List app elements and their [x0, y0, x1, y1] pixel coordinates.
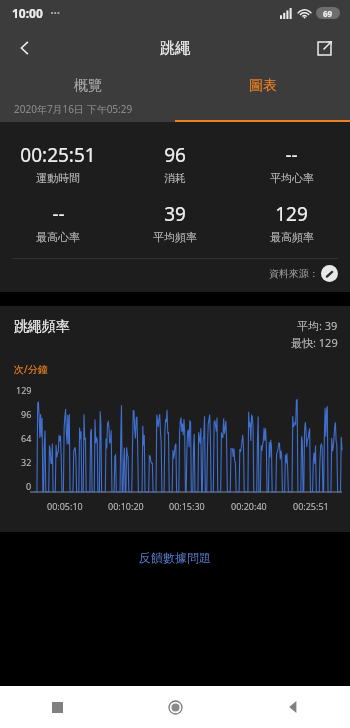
staticText: 2020年7月16日 下午05:29 — [14, 102, 133, 116]
button[interactable]: -- — [233, 142, 350, 185]
staticText: 圖表 — [249, 77, 277, 95]
button[interactable]: 39 — [116, 201, 233, 244]
staticText: 平均心率 — [270, 171, 314, 185]
staticText: 最快: 129 — [291, 335, 338, 350]
staticText: 00:20:40 — [231, 500, 267, 512]
staticText: 最高心率 — [36, 230, 80, 244]
staticText: -- — [52, 201, 65, 227]
staticText: 00:15:30 — [169, 500, 205, 512]
staticText: 96 — [21, 408, 32, 420]
button[interactable]: 00:25:51 — [0, 142, 116, 185]
staticText: 39 — [164, 201, 186, 227]
button[interactable]: 96 — [116, 142, 233, 185]
staticText: 96 — [164, 142, 186, 168]
button[interactable]: Back — [276, 690, 310, 724]
staticText: 00:25:51 — [293, 500, 329, 512]
staticText: 129 — [16, 384, 32, 396]
staticText: 資料來源： — [269, 267, 319, 280]
staticText: 跳繩頻率 — [14, 318, 70, 336]
staticText: 最高頻率 — [270, 230, 314, 244]
button[interactable]: Back — [6, 29, 44, 67]
staticText: -- — [285, 142, 298, 168]
staticText: 概覽 — [74, 77, 102, 95]
button[interactable]: 反饋數據問題 — [129, 546, 221, 569]
button[interactable]: Recent apps — [40, 690, 74, 724]
staticText: 0 — [26, 480, 32, 492]
button[interactable]: 概覽 — [0, 70, 175, 102]
staticText: 跳繩 — [160, 39, 190, 58]
button[interactable]: 129 — [233, 201, 350, 244]
staticText: 69 — [323, 8, 333, 19]
staticText: 平均頻率 — [153, 230, 197, 244]
button[interactable]: Home — [158, 690, 192, 724]
staticText: 64 — [21, 432, 32, 444]
staticText: 次/分鐘 — [14, 362, 48, 376]
button[interactable]: Data source — [321, 265, 338, 282]
staticText: 00:25:51 — [20, 142, 96, 168]
staticText: 反饋數據問題 — [139, 550, 211, 565]
button[interactable]: -- — [0, 201, 116, 244]
staticText: 00:05:10 — [47, 500, 83, 512]
button[interactable]: Share — [306, 30, 342, 66]
staticText: 平均: 39 — [297, 318, 338, 333]
staticText: 129 — [275, 201, 308, 227]
staticText: 消耗 — [164, 171, 186, 185]
staticText: 10:00 — [12, 5, 43, 21]
staticText: 運動時間 — [36, 171, 80, 185]
staticText: 00:10:20 — [108, 500, 144, 512]
button[interactable]: 圖表 — [175, 70, 350, 102]
staticText: 32 — [21, 456, 32, 468]
